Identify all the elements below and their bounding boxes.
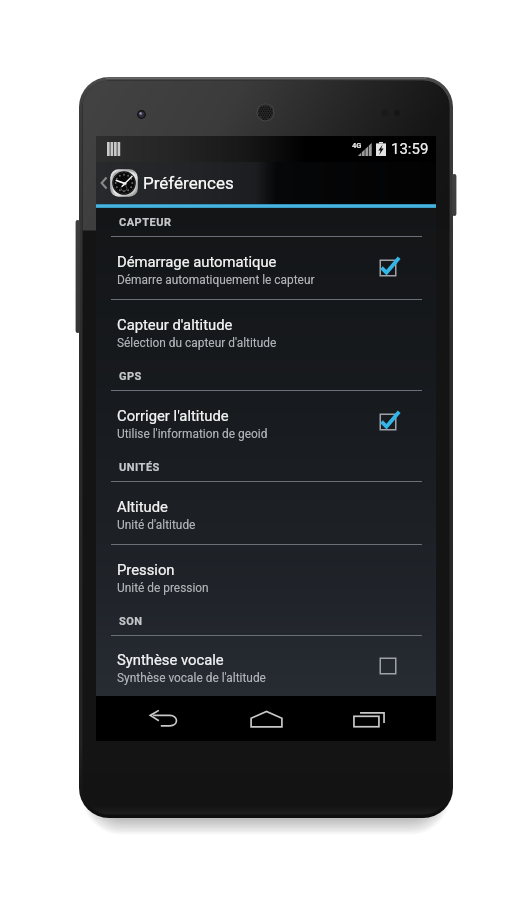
button[interactable]: Back <box>129 697 199 741</box>
button[interactable]: Pression <box>96 545 436 607</box>
button[interactable]: Préférences <box>96 162 436 204</box>
staticText: Unité de pression <box>117 581 209 595</box>
button[interactable]: Capteur d'altitude <box>96 300 436 362</box>
staticText: Démarrage automatique <box>117 253 277 270</box>
button[interactable]: Recent apps <box>334 697 404 741</box>
button[interactable]: Checked <box>375 255 401 281</box>
staticText: Unité d'altitude <box>117 518 196 532</box>
staticText: Pression <box>117 561 175 578</box>
staticText: Sélection du capteur d'altitude <box>117 336 277 350</box>
staticText: SON <box>119 615 143 628</box>
button[interactable]: Altitude <box>96 482 436 544</box>
staticText: GPS <box>119 370 142 383</box>
staticText: Synthèse vocale de l'altitude <box>117 671 266 685</box>
staticText: CAPTEUR <box>119 216 172 229</box>
staticText: Démarre automatiquement le capteur <box>117 273 315 287</box>
staticText: Préférences <box>143 173 234 193</box>
staticText: Capteur d'altitude <box>117 316 233 333</box>
staticText: 4G <box>352 141 362 150</box>
staticText: Corriger l'altitude <box>117 407 229 424</box>
button[interactable]: Unchecked <box>375 653 401 679</box>
staticText: Altitude <box>117 498 168 515</box>
staticText: 13:59 <box>391 140 429 158</box>
staticText: Utilise l'information de geoid <box>117 427 268 441</box>
button[interactable]: Synthèse vocale <box>96 636 436 696</box>
button[interactable]: Démarrage automatique <box>96 237 436 299</box>
button[interactable]: Home <box>231 697 301 741</box>
button[interactable]: Corriger l'altitude <box>96 391 436 453</box>
staticText: Synthèse vocale <box>117 651 224 668</box>
button[interactable]: Checked <box>375 409 401 435</box>
staticText: UNITÉS <box>119 461 160 474</box>
